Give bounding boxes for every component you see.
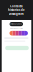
staticText: Sin tarjeta de credito [10,27,23,29]
staticText: historias de [8,8,25,12]
staticText: Empezar ahora [10,23,22,25]
staticText: Contacta [10,4,23,8]
button[interactable]: Empezar ahora [10,22,23,26]
staticText: Instagram [9,12,24,16]
